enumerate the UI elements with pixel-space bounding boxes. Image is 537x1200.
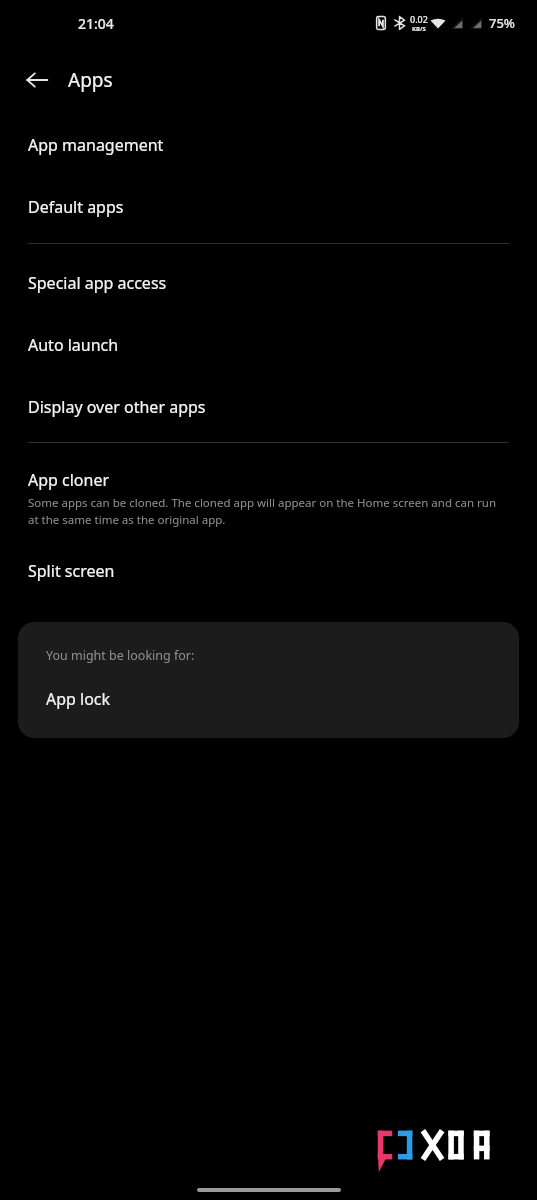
staticText: Some apps can be cloned. The cloned app … (28, 495, 509, 528)
staticText: App cloner (28, 469, 110, 491)
button[interactable]: Split screen (0, 544, 537, 602)
button[interactable]: Default apps (0, 176, 537, 243)
staticText: Default apps (28, 196, 124, 218)
button[interactable]: Auto launch (0, 314, 537, 376)
staticText: 21:04 (78, 14, 114, 33)
staticText: 75% (489, 14, 515, 32)
staticText: 0.02 (410, 13, 428, 25)
staticText: Special app access (28, 272, 167, 294)
staticText: App management (28, 134, 164, 156)
button[interactable]: App lock (18, 664, 519, 738)
staticText: KB/S (412, 25, 426, 33)
staticText: Display over other apps (28, 396, 206, 418)
staticText: Auto launch (28, 334, 119, 356)
staticText: App lock (46, 688, 111, 710)
staticText: Split screen (28, 560, 115, 582)
button[interactable]: Back (14, 57, 60, 103)
button[interactable]: App management (0, 114, 537, 176)
button[interactable]: Display over other apps (0, 376, 537, 442)
staticText: Apps (68, 67, 113, 93)
button[interactable]: App cloner (0, 443, 537, 544)
staticText: You might be looking for: (46, 647, 195, 664)
button[interactable]: Special app access (0, 244, 537, 314)
